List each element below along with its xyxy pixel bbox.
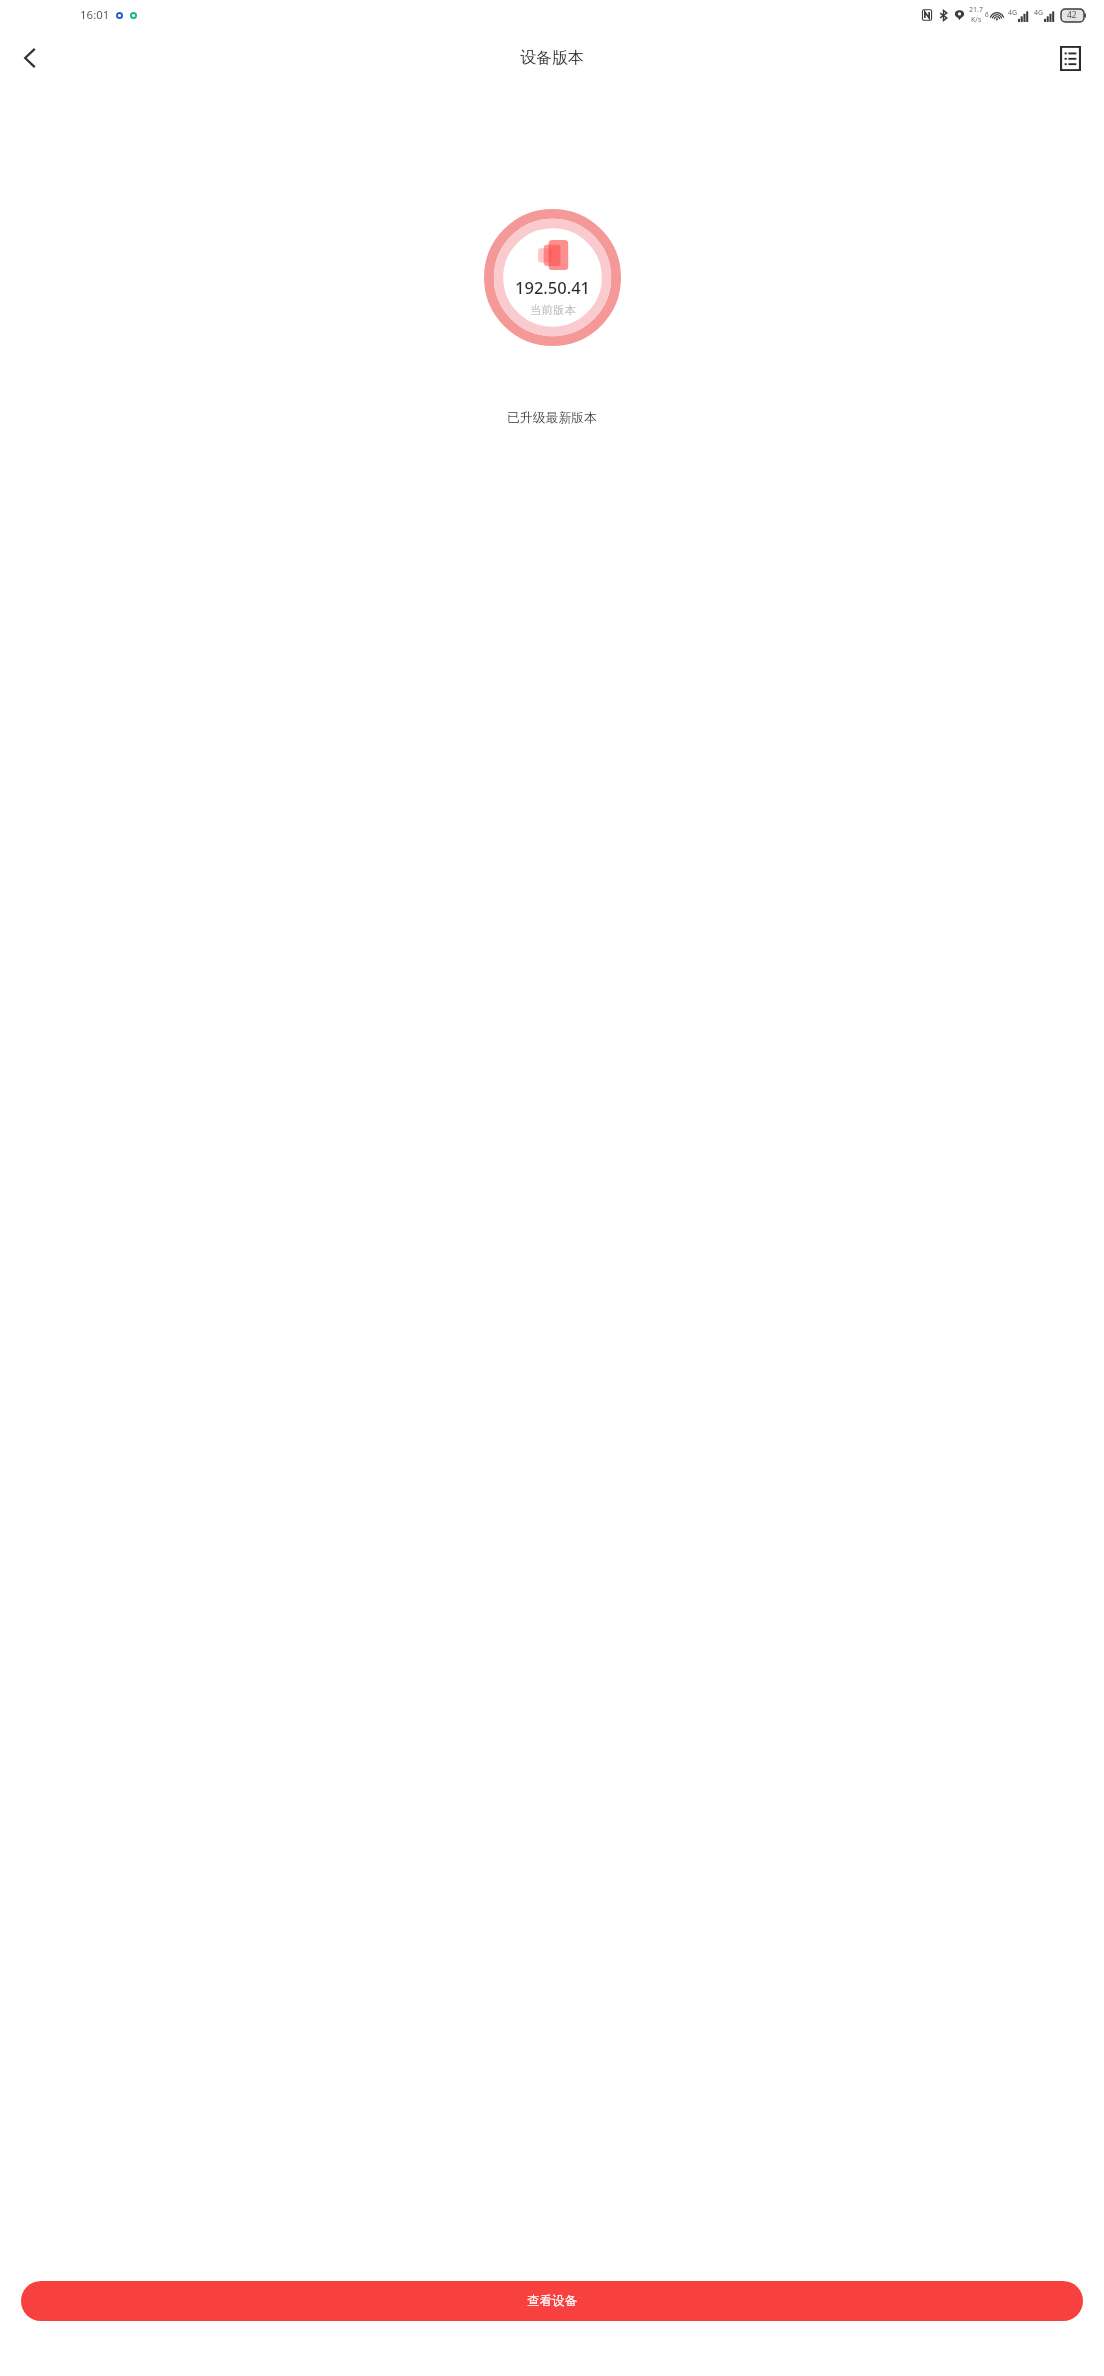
button[interactable]: 版本记录 — [1046, 34, 1094, 82]
staticText: K/s — [971, 15, 982, 25]
staticText: 设备版本 — [520, 48, 584, 68]
staticText: 21.7 — [969, 5, 983, 15]
staticText: 16:01 — [80, 7, 110, 23]
staticText: 42 — [1067, 9, 1077, 21]
staticText: 192.50.41 — [515, 276, 591, 298]
staticText: 4G — [1034, 8, 1044, 18]
button[interactable]: Back — [6, 34, 54, 82]
staticText: 4G — [1008, 8, 1018, 18]
staticText: 6 — [985, 10, 989, 19]
staticText: 查看设备 — [527, 2293, 577, 2309]
button[interactable]: 查看设备 — [21, 2281, 1083, 2321]
staticText: 当前版本 — [530, 303, 576, 317]
staticText: 已升级最新版本 — [0, 410, 1104, 426]
